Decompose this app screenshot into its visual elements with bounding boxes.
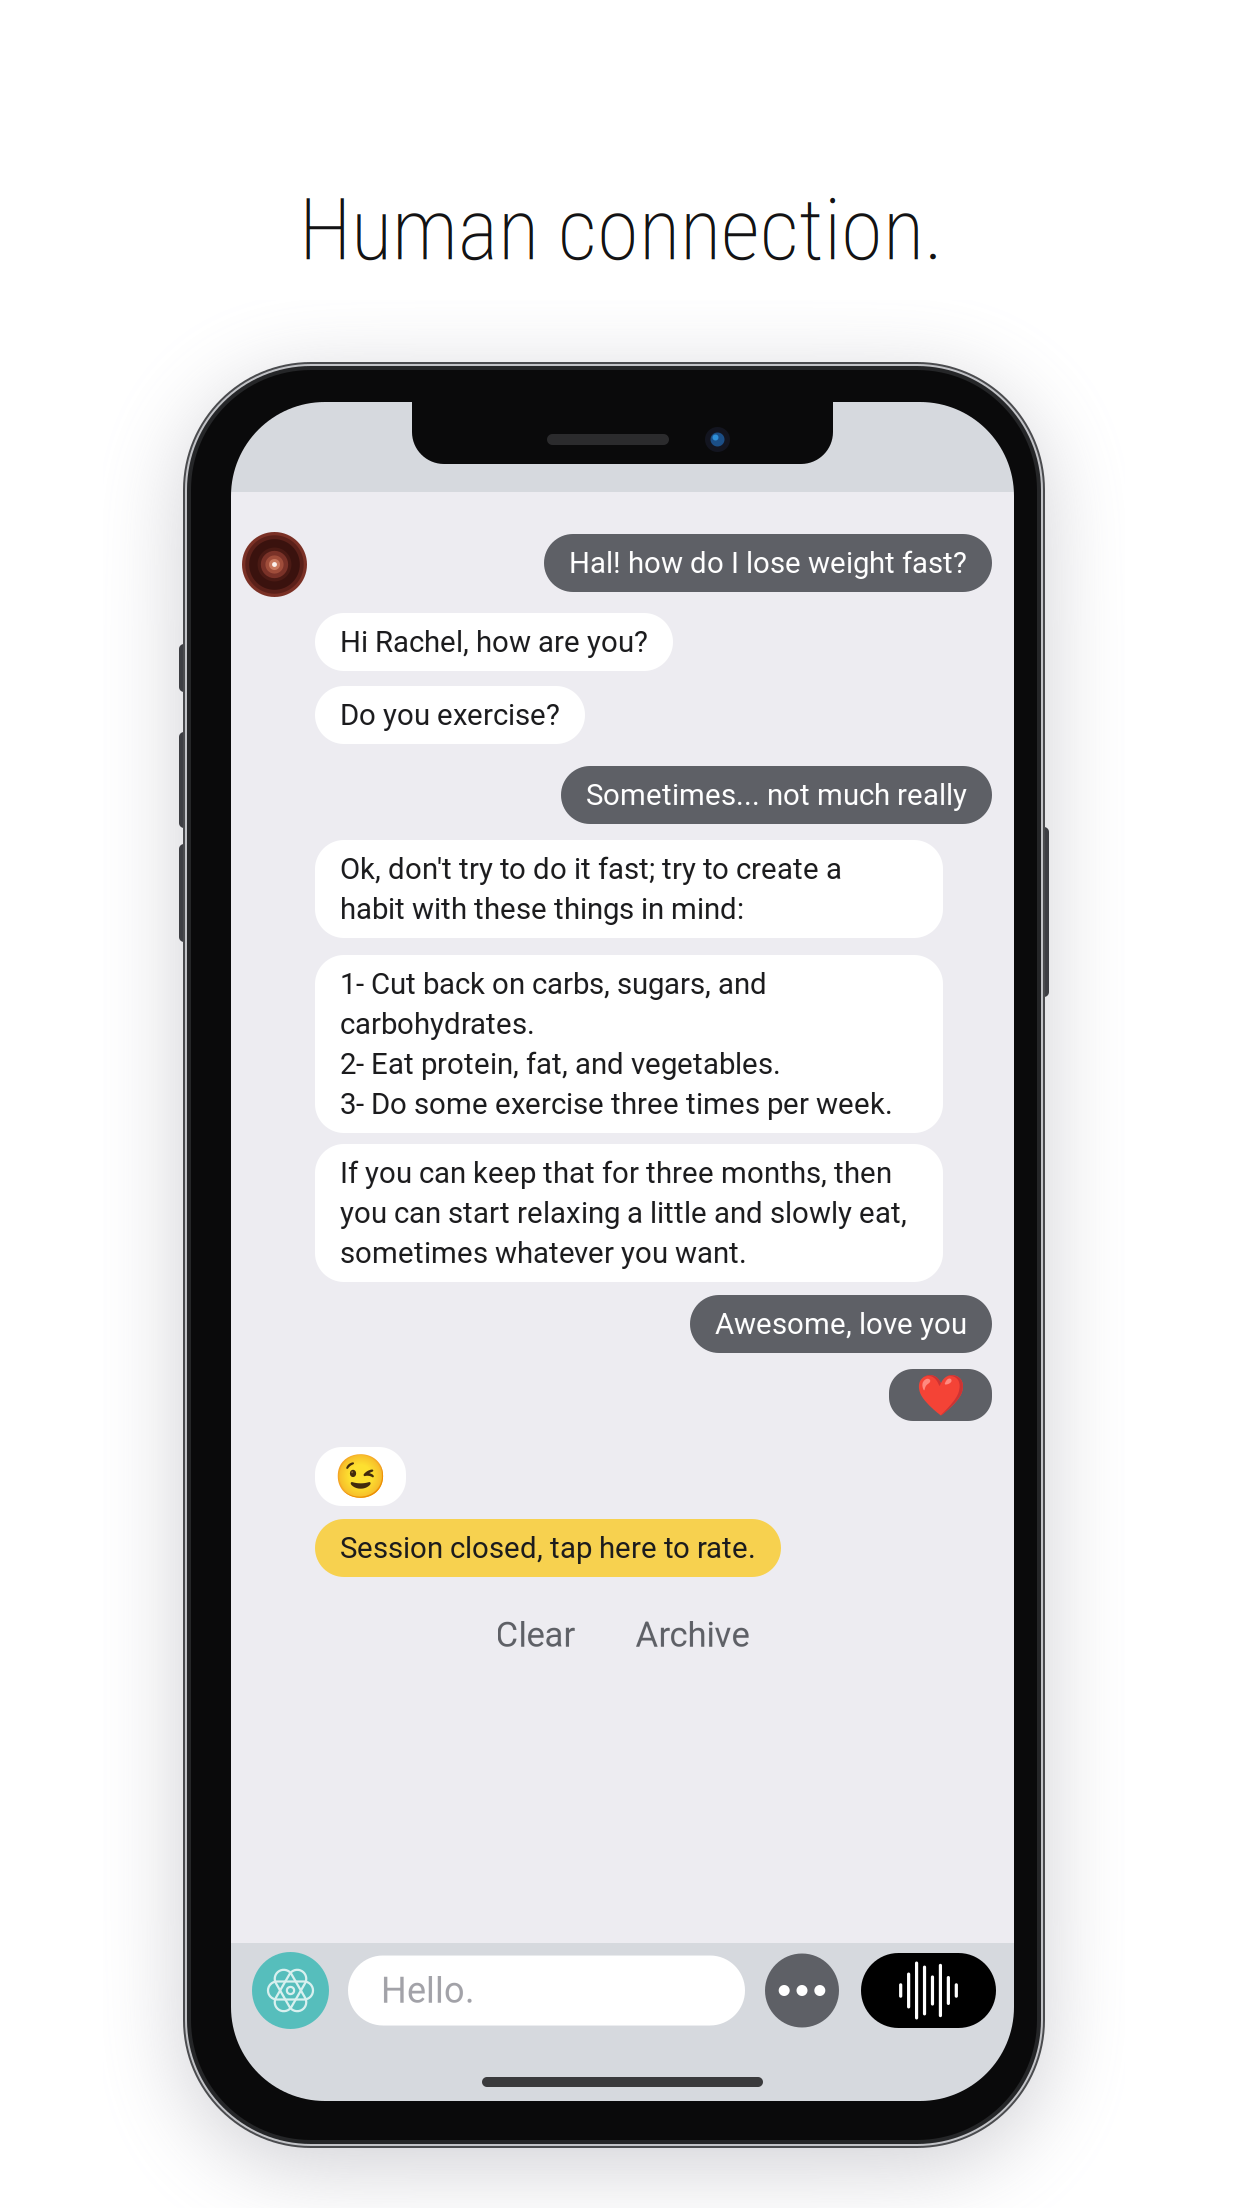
staticText: you can start relaxing a little and slow… xyxy=(340,1196,907,1230)
staticText: sometimes whatever you want. xyxy=(340,1236,747,1270)
staticText: 1- Cut back on carbs, sugars, and xyxy=(340,967,767,1001)
button[interactable]: Message field xyxy=(348,1955,745,2025)
button[interactable]: Archive xyxy=(621,1611,763,1659)
staticText: Do you exercise? xyxy=(340,698,560,732)
button[interactable]: Voice message xyxy=(861,1953,996,2028)
staticText: Hi Rachel, how are you? xyxy=(340,625,648,659)
staticText: 😉 xyxy=(334,1451,387,1501)
staticText: carbohydrates. xyxy=(340,1007,535,1041)
button[interactable]: Assistant xyxy=(252,1952,329,2029)
button[interactable]: Session closed, tap here to rate. xyxy=(315,1519,781,1577)
staticText: Hal! how do I lose weight fast? xyxy=(569,546,967,580)
staticText: 3- Do some exercise three times per week… xyxy=(340,1087,893,1121)
staticText: If you can keep that for three months, t… xyxy=(340,1156,892,1190)
staticText: Clear xyxy=(495,1615,575,1655)
staticText: Ok, don't try to do it fast; try to crea… xyxy=(340,852,842,886)
staticText: Hello. xyxy=(381,1969,474,2012)
staticText: Sometimes... not much really xyxy=(586,778,967,812)
staticText: habit with these things in mind: xyxy=(340,892,744,926)
staticText: Session closed, tap here to rate. xyxy=(340,1531,756,1565)
staticText: 2- Eat protein, fat, and vegetables. xyxy=(340,1047,781,1081)
staticText: Human connection. xyxy=(299,180,943,280)
button[interactable]: More options xyxy=(765,1953,839,2027)
staticText: Archive xyxy=(635,1615,749,1655)
staticText: Awesome, love you xyxy=(715,1307,967,1341)
button[interactable]: Clear xyxy=(481,1611,589,1659)
staticText: ❤️ xyxy=(915,1372,965,1418)
